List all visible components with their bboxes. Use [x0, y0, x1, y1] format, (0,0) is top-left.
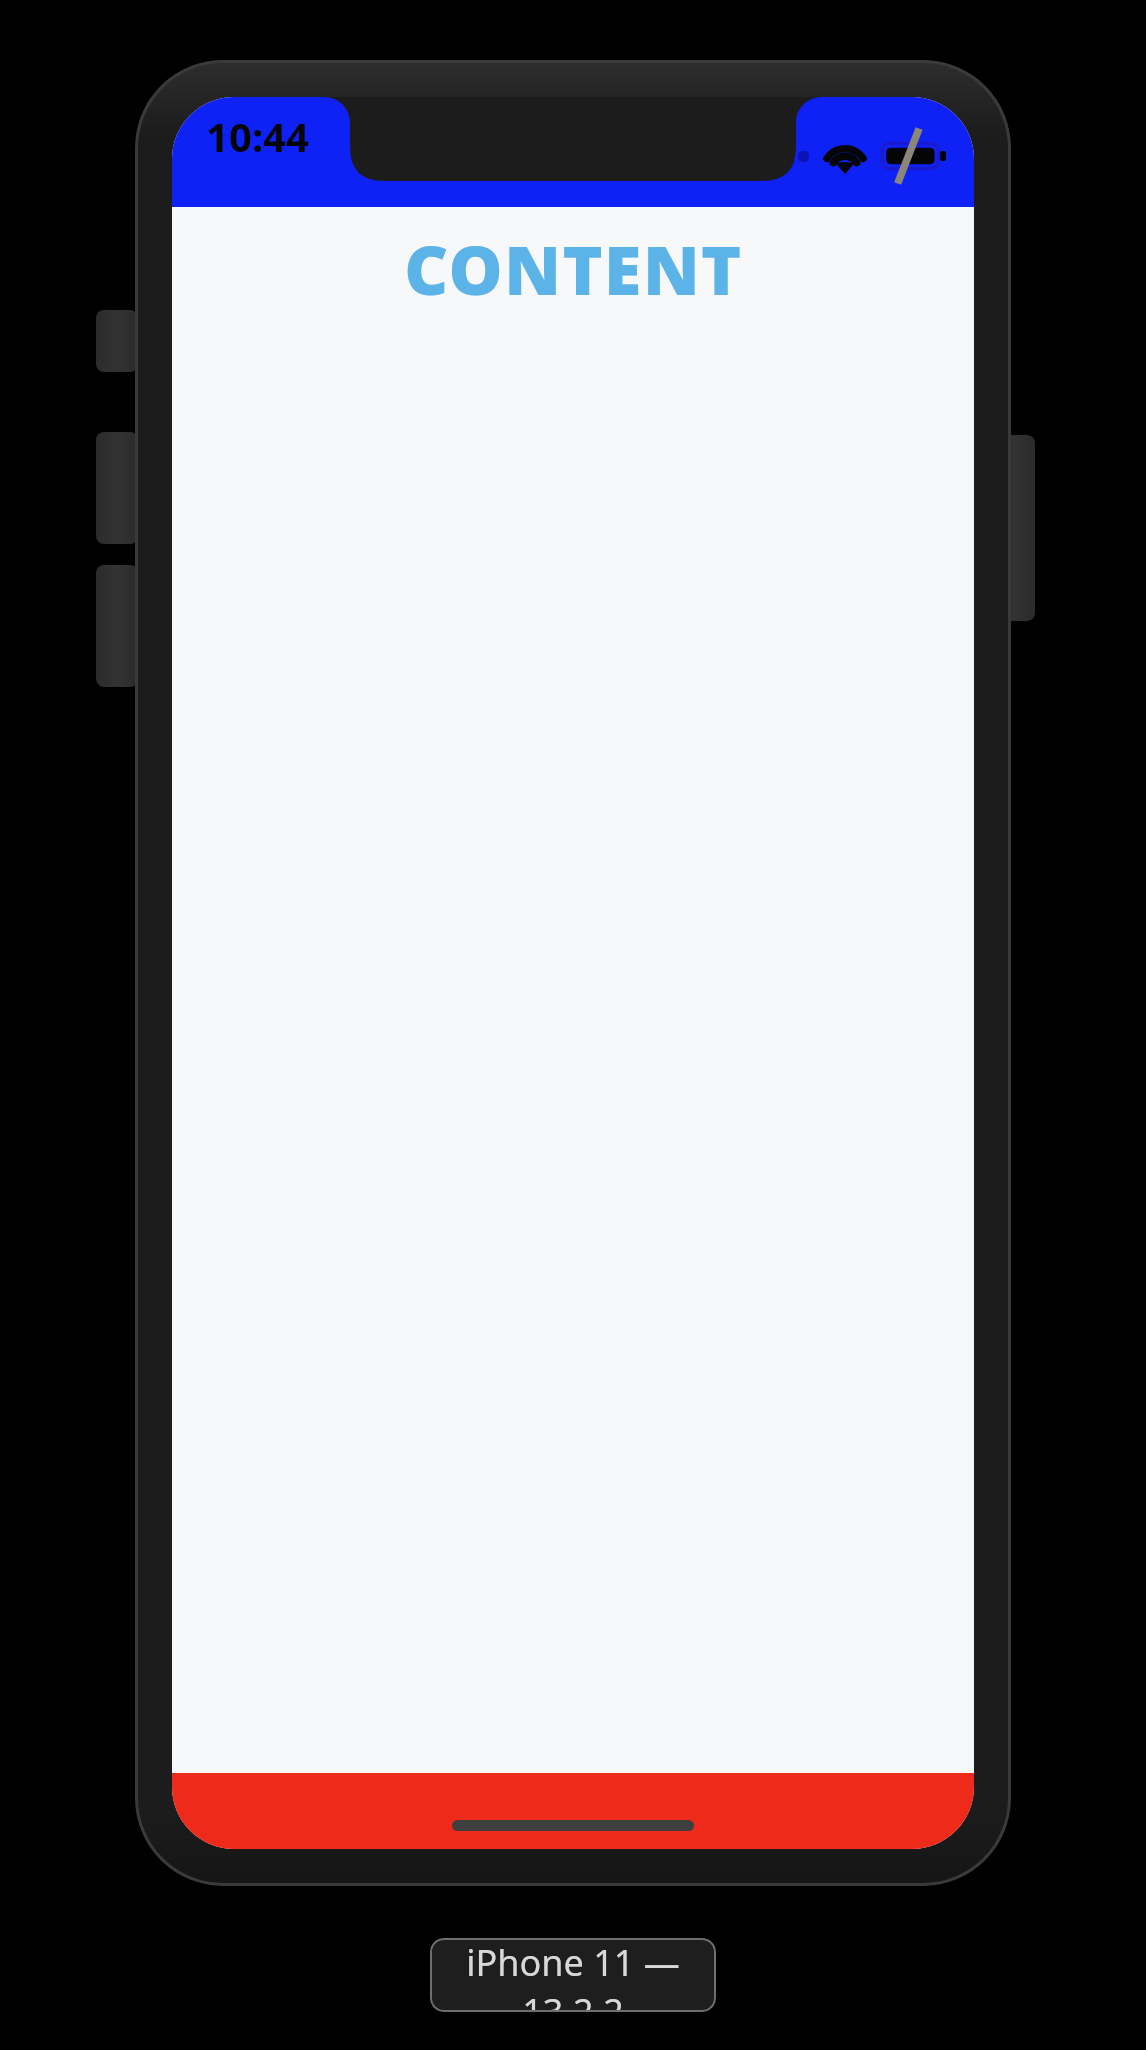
- button[interactable]: Side button: [96, 565, 138, 687]
- button[interactable]: Status icons: [747, 136, 948, 176]
- staticText: CONTENT: [404, 222, 743, 315]
- button[interactable]: Side button: [96, 310, 138, 372]
- button[interactable]: 10:44: [202, 109, 313, 163]
- button[interactable]: Home indicator: [452, 1820, 694, 1831]
- button[interactable]: Side button: [96, 432, 138, 544]
- button[interactable]: iPhone 11 — 13.2.2: [430, 1938, 716, 2012]
- button[interactable]: Side button: [993, 435, 1035, 621]
- staticText: iPhone 11 — 13.2.2: [430, 1938, 716, 2012]
- button[interactable]: CONTENT: [172, 222, 974, 315]
- staticText: 10:44: [206, 109, 309, 163]
